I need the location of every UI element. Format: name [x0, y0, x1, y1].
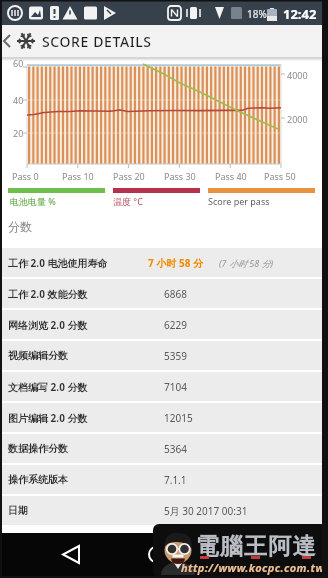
staticText: SCORE DETAILS [42, 32, 152, 51]
staticText: Pass 20 [113, 170, 145, 182]
staticText: 工作 2.0 效能分数 [8, 287, 88, 301]
staticText: 图片编辑 2.0 分数 [8, 411, 88, 425]
staticText: 18% [247, 7, 267, 21]
button[interactable]: 工作 2.0 效能分数 [0, 279, 328, 308]
staticText: 网络浏览 2.0 分数 [8, 318, 88, 332]
staticText: (7 小时 58 分) [219, 257, 274, 269]
staticText: 7.1.1 [164, 473, 187, 487]
staticText: 温度 °C [113, 195, 143, 207]
staticText: 工作 2.0 电池使用寿命 [8, 256, 108, 270]
staticText: 文档编写 2.0 分数 [8, 380, 88, 394]
staticText: Pass 10 [62, 170, 94, 182]
staticText: 视频编辑分数 [8, 349, 68, 362]
button[interactable]: 图片编辑 2.0 分数 [0, 403, 328, 432]
staticText: 20 [13, 127, 24, 139]
staticText: 12:42 [283, 5, 317, 23]
staticText: 电池电量 % [10, 195, 56, 207]
button[interactable]: 工作 2.0 电池使用寿命 [0, 248, 328, 277]
staticText: 5364 [164, 442, 187, 456]
button[interactable]: 文档编写 2.0 分数 [0, 372, 328, 401]
staticText: Score per pass [208, 195, 270, 207]
button[interactable]: 電腦王阿達 [153, 524, 327, 577]
staticText: 40 [13, 94, 24, 106]
staticText: 操作系统版本 [8, 473, 68, 486]
staticText: http://www.kocpc.com.tw [181, 560, 325, 575]
staticText: Pass 0 [12, 170, 39, 182]
staticText: 60 [13, 57, 24, 69]
button[interactable]: 日期 [0, 496, 328, 525]
staticText: 7104 [164, 380, 187, 394]
staticText: 7 小时 58 分 [148, 256, 203, 270]
staticText: Pass 50 [264, 170, 296, 182]
button[interactable] [0, 25, 40, 58]
staticText: 数据操作分数 [8, 442, 68, 455]
staticText: 5月 30 2017 00:31 [164, 504, 248, 518]
staticText: 4000 [287, 69, 308, 81]
button[interactable] [58, 541, 92, 575]
button[interactable]: 数据操作分数 [0, 434, 328, 463]
button[interactable]: 视频编辑分数 [0, 341, 328, 370]
staticText: Pass 30 [164, 170, 196, 182]
staticText: Pass 40 [215, 170, 247, 182]
staticText: 6868 [164, 287, 187, 301]
staticText: 5359 [164, 349, 187, 363]
staticText: 2000 [287, 113, 308, 125]
staticText: 12015 [164, 411, 193, 425]
button[interactable]: 操作系统版本 [0, 465, 328, 494]
staticText: 6229 [164, 318, 187, 332]
staticText: 電腦王阿達 [195, 532, 316, 561]
staticText: 分数 [8, 219, 32, 234]
button[interactable]: 网络浏览 2.0 分数 [0, 310, 328, 339]
staticText: 日期 [8, 504, 28, 517]
